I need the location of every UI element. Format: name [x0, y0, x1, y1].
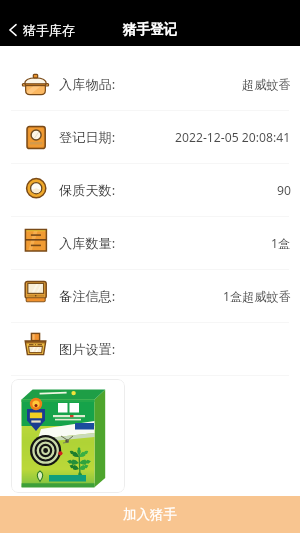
button[interactable]: 入库物品: — [0, 58, 300, 110]
button[interactable]: 保质天数: — [0, 164, 300, 216]
button[interactable]: 入库数量: — [0, 217, 300, 269]
staticText: 超威蚊香 — [242, 77, 291, 92]
staticText: 1盒超威蚊香 — [223, 288, 291, 305]
button[interactable]: Product photo — [11, 379, 125, 493]
staticText: 登记日期: — [59, 128, 116, 146]
staticText: 猪手登记 — [123, 21, 177, 38]
staticText: 保质天数: — [59, 181, 116, 199]
button[interactable]: 猪手库存 — [0, 17, 85, 43]
button[interactable]: 备注信息: — [0, 270, 300, 322]
staticText: 备注信息: — [59, 287, 116, 305]
staticText: 1盒 — [271, 235, 291, 252]
staticText: 加入猪手 — [123, 506, 177, 523]
staticText: 入库物品: — [59, 75, 116, 93]
staticText: 2022-12-05 20:08:41 — [175, 129, 291, 146]
staticText: 入库数量: — [59, 234, 116, 252]
button[interactable]: 登记日期: — [0, 111, 300, 163]
staticText: 90 — [277, 182, 291, 199]
staticText: 图片设置: — [59, 340, 116, 358]
button[interactable]: 加入猪手 — [0, 496, 300, 533]
button[interactable]: 图片设置: — [0, 323, 300, 375]
staticText: 猪手库存 — [23, 22, 75, 38]
